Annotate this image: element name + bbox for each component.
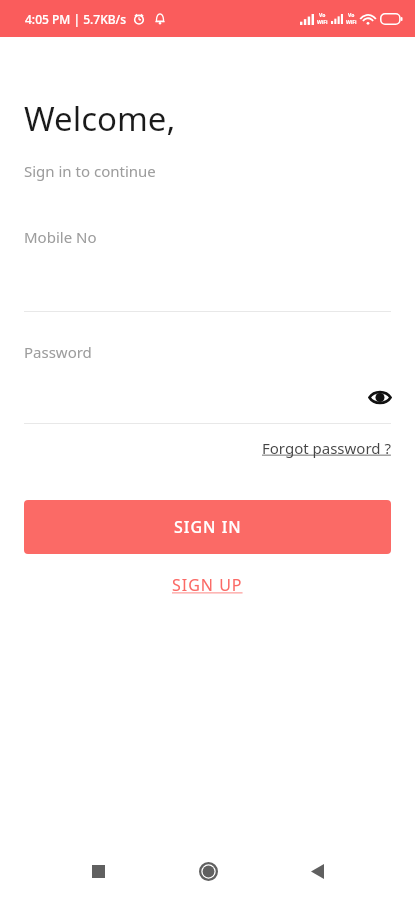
staticText: Vo [319, 12, 326, 19]
button[interactable]: Show password [363, 380, 397, 414]
button[interactable]: SIGN IN [24, 500, 391, 554]
staticText: SIGN UP [172, 574, 243, 596]
button[interactable]: Mobile No [0, 227, 415, 312]
staticText: SIGN IN [174, 516, 242, 538]
button[interactable]: Password [0, 342, 415, 424]
button[interactable]: Home [188, 851, 228, 891]
staticText: Welcome, [24, 96, 176, 141]
staticText: Forgot password ? [262, 438, 391, 458]
staticText: Mobile No [24, 227, 97, 247]
button[interactable]: SIGN UP [160, 568, 255, 602]
staticText: WiFi [346, 19, 357, 26]
staticText: Password [24, 342, 92, 362]
staticText: 4:05 PM | 5.7KB/s [25, 11, 127, 27]
staticText: Vo [348, 12, 355, 19]
button[interactable]: Forgot password ? [262, 438, 391, 458]
staticText: WiFi [317, 19, 328, 26]
button[interactable]: Back [297, 851, 337, 891]
staticText: Sign in to continue [24, 161, 156, 181]
button[interactable]: Recents [78, 851, 118, 891]
